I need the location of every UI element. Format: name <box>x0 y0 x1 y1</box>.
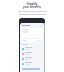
staticText: Take control of your health and wellness… <box>18 10 47 16</box>
button[interactable] <box>22 68 40 70</box>
button[interactable] <box>22 46 42 51</box>
staticText: Benefits <box>22 24 31 27</box>
button[interactable] <box>22 61 42 66</box>
button[interactable] <box>22 51 42 56</box>
button[interactable] <box>21 28 43 42</box>
staticText: Simplify your benefits <box>23 2 41 9</box>
button[interactable] <box>22 56 42 61</box>
